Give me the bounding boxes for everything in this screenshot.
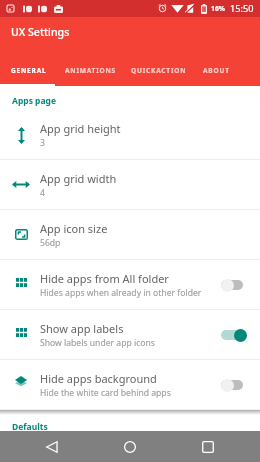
staticText: Hide apps from All folder — [40, 271, 169, 286]
staticText: 3 — [40, 137, 45, 149]
button[interactable]: Recent apps — [156, 431, 260, 462]
staticText: QUICKACTION — [131, 66, 187, 75]
button[interactable]: App grid height — [0, 110, 260, 160]
staticText: Show labels under app icons — [40, 337, 155, 349]
button[interactable] — [221, 278, 247, 292]
staticText: 4 — [40, 187, 45, 199]
staticText: Hide the white card behind apps — [40, 387, 171, 399]
button[interactable]: Show app labels — [0, 310, 260, 360]
staticText: App grid width — [40, 171, 117, 186]
button[interactable]: Home — [104, 431, 156, 462]
staticText: Apps page — [12, 95, 57, 107]
button[interactable] — [221, 328, 247, 342]
button[interactable]: App grid width — [0, 160, 260, 210]
staticText: 56dp — [40, 237, 61, 249]
staticText: Defaults — [12, 421, 48, 431]
staticText: UX Settings — [11, 25, 70, 39]
button[interactable]: ANIMATIONS — [57, 55, 123, 86]
staticText: 15:50 — [230, 2, 254, 15]
button[interactable]: App icon size — [0, 210, 260, 260]
staticText: GENERAL — [11, 66, 47, 75]
staticText: Hides apps when already in other folder — [40, 287, 202, 299]
staticText: 16% — [211, 4, 225, 13]
button[interactable]: Hide apps from All folder — [0, 260, 260, 310]
staticText: Show app labels — [40, 321, 124, 336]
staticText: App grid height — [40, 121, 121, 136]
staticText: App icon size — [40, 221, 108, 236]
button[interactable]: Back — [0, 431, 104, 462]
button[interactable]: QUICKACTION — [123, 55, 195, 86]
button[interactable]: ABOUT — [195, 55, 238, 86]
button[interactable]: GENERAL — [0, 55, 57, 86]
staticText: Hide apps background — [40, 371, 157, 386]
button[interactable] — [221, 378, 247, 392]
button[interactable]: Hide apps background — [0, 360, 260, 410]
staticText: ANIMATIONS — [65, 66, 116, 75]
staticText: ABOUT — [203, 66, 230, 75]
